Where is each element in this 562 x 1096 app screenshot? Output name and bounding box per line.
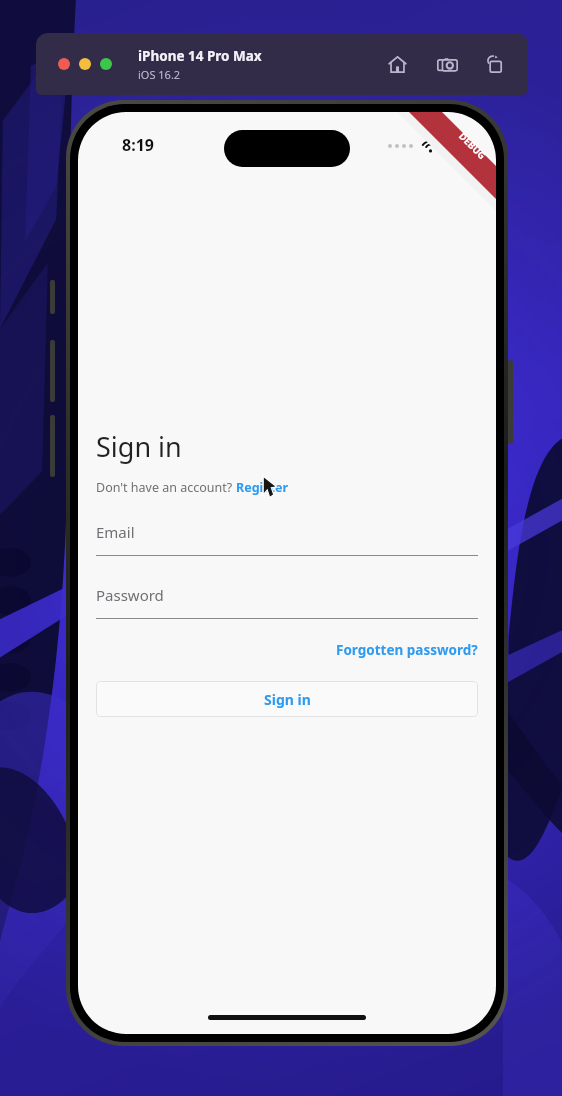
button[interactable]: Email: [96, 522, 478, 556]
staticText: Password: [96, 585, 164, 605]
button[interactable]: Sign in: [96, 681, 478, 717]
staticText: Sign in: [264, 690, 311, 709]
staticText: Email: [96, 522, 135, 542]
staticText: iOS 16.2: [138, 67, 181, 82]
button[interactable]: Minimise: [79, 58, 91, 70]
button[interactable]: Register: [236, 479, 289, 496]
button[interactable]: Maximise: [100, 58, 112, 70]
button[interactable]: Home: [382, 49, 412, 79]
staticText: Don't have an account?: [96, 479, 236, 496]
staticText: DEBUG: [456, 130, 489, 162]
staticText: Register: [236, 479, 289, 496]
button[interactable]: Close: [58, 58, 70, 70]
staticText: Sign in: [96, 428, 182, 465]
staticText: 8:19: [122, 134, 154, 156]
staticText: iPhone 14 Pro Max: [138, 47, 262, 65]
button[interactable]: Password: [96, 585, 478, 619]
button[interactable]: Screenshot: [432, 49, 462, 79]
button[interactable]: Forgotten password?: [96, 641, 478, 659]
button[interactable]: Rotate: [482, 49, 508, 79]
staticText: Forgotten password?: [336, 641, 478, 659]
